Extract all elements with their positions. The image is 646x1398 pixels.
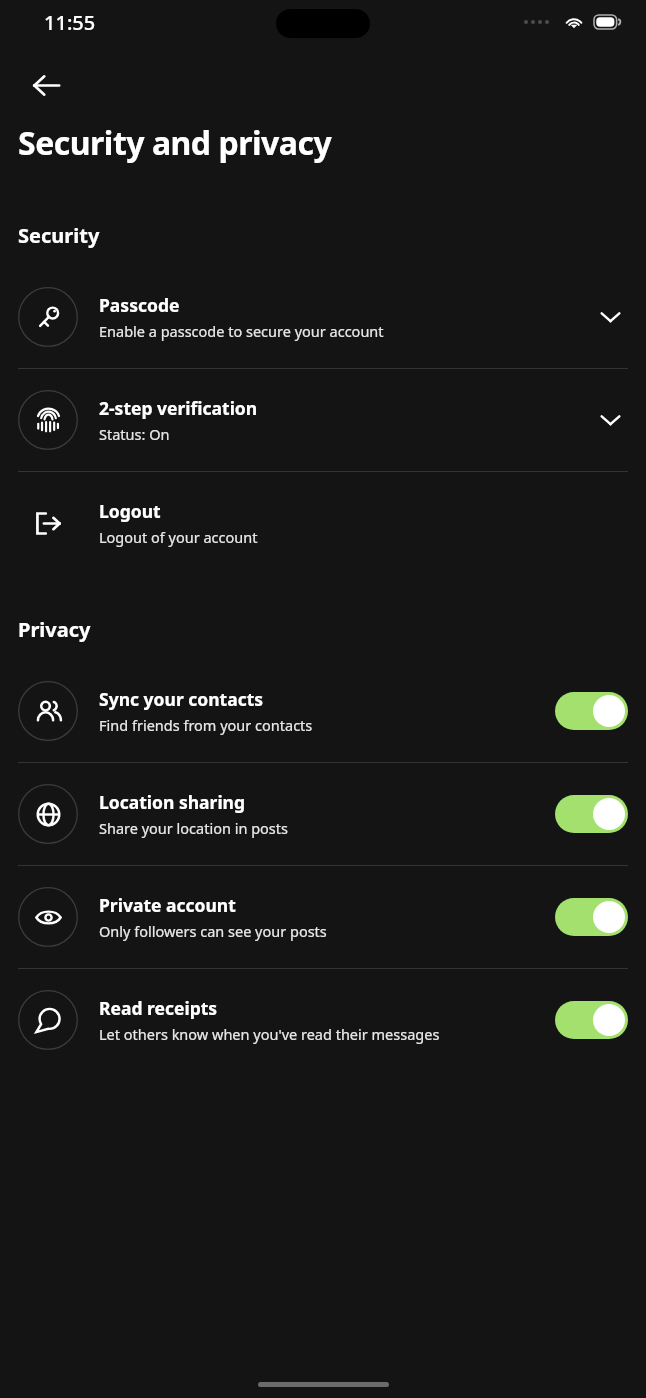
button[interactable]: Private account — [0, 866, 646, 968]
staticText: Let others know when you've read their m… — [99, 1024, 440, 1044]
staticText: Read receipts — [99, 996, 218, 1020]
staticText: Sync your contacts — [99, 687, 264, 711]
button[interactable]: Sync your contacts, on — [555, 692, 628, 730]
staticText: Only followers can see your posts — [99, 921, 327, 941]
staticText: Logout of your account — [99, 527, 258, 547]
button[interactable]: Sync your contacts — [0, 660, 646, 762]
button[interactable]: 2-step verification — [0, 369, 646, 471]
staticText: Private account — [99, 893, 236, 917]
staticText: Passcode — [99, 293, 180, 317]
button[interactable]: Location sharing — [0, 763, 646, 865]
staticText: Privacy — [18, 616, 91, 643]
staticText: Location sharing — [99, 790, 246, 814]
button[interactable]: Passcode — [0, 266, 646, 368]
staticText: Security and privacy — [18, 121, 332, 165]
staticText: Security — [18, 222, 100, 249]
staticText: Logout — [99, 499, 161, 523]
button[interactable]: Back — [22, 61, 70, 109]
staticText: Share your location in posts — [99, 818, 288, 838]
staticText: 2-step verification — [99, 396, 258, 420]
button[interactable]: Read receipts — [0, 969, 646, 1071]
staticText: 11:55 — [44, 9, 96, 36]
staticText: Status: On — [99, 424, 170, 444]
staticText: Enable a passcode to secure your account — [99, 321, 384, 341]
button[interactable]: Expand 2-step verification — [592, 402, 628, 438]
button[interactable]: Read receipts, on — [555, 1001, 628, 1039]
button[interactable]: Private account, on — [555, 898, 628, 936]
staticText: Find friends from your contacts — [99, 715, 313, 735]
button[interactable]: Location sharing, on — [555, 795, 628, 833]
button[interactable]: Logout — [0, 472, 646, 574]
button[interactable]: Expand Passcode — [592, 299, 628, 335]
